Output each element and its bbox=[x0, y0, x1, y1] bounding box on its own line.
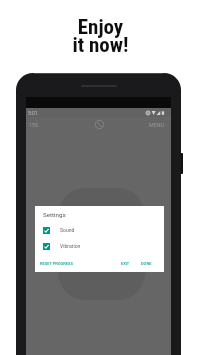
staticText: Enjoy it now! bbox=[72, 15, 129, 57]
staticText: 5:01 bbox=[28, 110, 38, 116]
staticText: Vibration bbox=[60, 243, 81, 249]
staticText: MENU bbox=[149, 122, 164, 128]
button[interactable]: 155 bbox=[26, 122, 42, 128]
staticText: 155 bbox=[29, 122, 39, 128]
button[interactable]: DONE bbox=[139, 259, 154, 268]
button[interactable]: EXIT bbox=[119, 259, 132, 268]
button[interactable]: MENU bbox=[145, 122, 171, 128]
button[interactable]: Vibration bbox=[35, 238, 164, 254]
button[interactable]: RESET PROGRESS bbox=[38, 259, 75, 268]
staticText: Sound bbox=[60, 227, 75, 233]
staticText: RESET PROGRESS bbox=[40, 261, 73, 266]
staticText: Settings bbox=[43, 211, 66, 218]
staticText: DONE bbox=[141, 261, 152, 266]
staticText: EXIT bbox=[121, 261, 130, 266]
button[interactable]: Sound off bbox=[94, 119, 104, 129]
button[interactable]: Sound bbox=[35, 222, 164, 238]
